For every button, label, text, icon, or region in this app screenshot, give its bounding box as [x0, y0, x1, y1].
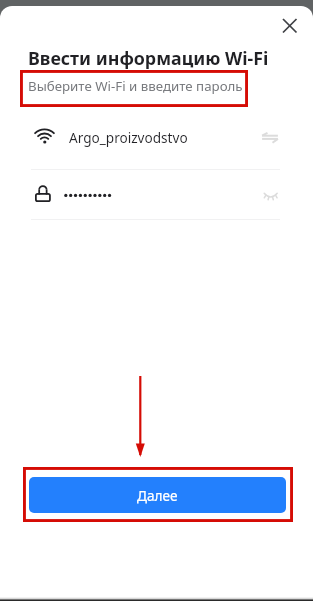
staticText: Argo_proizvodstvo	[69, 128, 188, 147]
button[interactable]: Change network	[258, 128, 283, 153]
button[interactable]: Close	[277, 13, 303, 39]
staticText: Далее	[137, 486, 178, 505]
staticText: Выберите Wi-Fi и введите пароль	[28, 77, 243, 95]
staticText: Ввести информацию Wi-Fi	[28, 46, 269, 70]
button[interactable]: Далее	[29, 477, 286, 513]
button[interactable]: Show password	[258, 186, 283, 211]
button[interactable]: Argo_proizvodstvo	[0, 119, 313, 169]
button[interactable]: Show password	[0, 169, 313, 219]
